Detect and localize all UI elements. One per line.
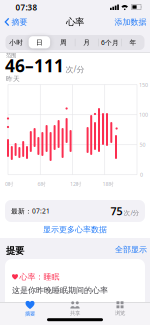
staticText: 周 bbox=[60, 38, 67, 47]
button[interactable]: 周 bbox=[60, 38, 67, 47]
staticText: 最新：07:21 bbox=[11, 207, 50, 215]
staticText: 全部显示 bbox=[115, 245, 147, 254]
staticText: 共享 bbox=[70, 310, 80, 316]
button[interactable]: 小时 bbox=[9, 38, 23, 47]
staticText: 浏览 bbox=[115, 310, 125, 316]
staticText: 提要 bbox=[6, 245, 24, 256]
button[interactable]: 月 bbox=[83, 38, 90, 47]
button[interactable]: 最新心率 75 次/分 bbox=[5, 200, 145, 222]
button[interactable]: 年 bbox=[130, 38, 137, 47]
staticText: 0时 bbox=[5, 180, 13, 188]
staticText: 18时 bbox=[102, 180, 113, 188]
staticText: 6时 bbox=[37, 180, 45, 188]
button[interactable]: 6个月 bbox=[101, 38, 119, 47]
staticText: 75 bbox=[110, 204, 122, 218]
staticText: 日 bbox=[36, 38, 43, 47]
button[interactable]: 浏览 bbox=[100, 300, 140, 318]
staticText: 150 bbox=[139, 81, 148, 89]
staticText: 显示更多心率数据 bbox=[43, 225, 107, 234]
staticText: 次/分 bbox=[65, 64, 84, 74]
staticText: 昨天 bbox=[6, 75, 20, 83]
staticText: 100 bbox=[139, 111, 148, 118]
button[interactable]: 日 bbox=[29, 36, 50, 48]
staticText: 0 bbox=[140, 171, 143, 178]
button[interactable]: 添加数据 bbox=[114, 17, 146, 27]
staticText: 小时 bbox=[9, 38, 23, 47]
staticText: 07:38 bbox=[15, 2, 37, 13]
staticText: 12时 bbox=[70, 180, 81, 188]
staticText: 摘要 bbox=[11, 17, 27, 27]
button[interactable]: 共享 bbox=[55, 300, 95, 318]
staticText: 46–111 bbox=[5, 54, 64, 77]
staticText: 心率：睡眠 bbox=[19, 272, 59, 282]
staticText: 月 bbox=[83, 38, 90, 47]
staticText: 添加数据 bbox=[114, 17, 146, 27]
staticText: 心率 bbox=[66, 16, 84, 28]
button[interactable]: 摘要 bbox=[10, 300, 50, 318]
button[interactable]: 日 bbox=[36, 38, 43, 47]
button[interactable]: 显示更多心率数据 bbox=[43, 225, 107, 234]
button[interactable]: 全部显示 bbox=[115, 245, 147, 254]
staticText: 范围 bbox=[6, 52, 16, 59]
staticText: 50 bbox=[139, 141, 145, 148]
button[interactable]: 心率：睡眠 bbox=[5, 259, 145, 325]
staticText: 次/分 bbox=[123, 208, 139, 217]
staticText: 这是你昨晚睡眠期间的心率 bbox=[12, 285, 108, 295]
button[interactable]: 返回摘要 bbox=[4, 17, 27, 27]
staticText: 6个月 bbox=[101, 38, 119, 47]
staticText: 年 bbox=[130, 38, 137, 47]
staticText: 摘要 bbox=[25, 310, 35, 317]
